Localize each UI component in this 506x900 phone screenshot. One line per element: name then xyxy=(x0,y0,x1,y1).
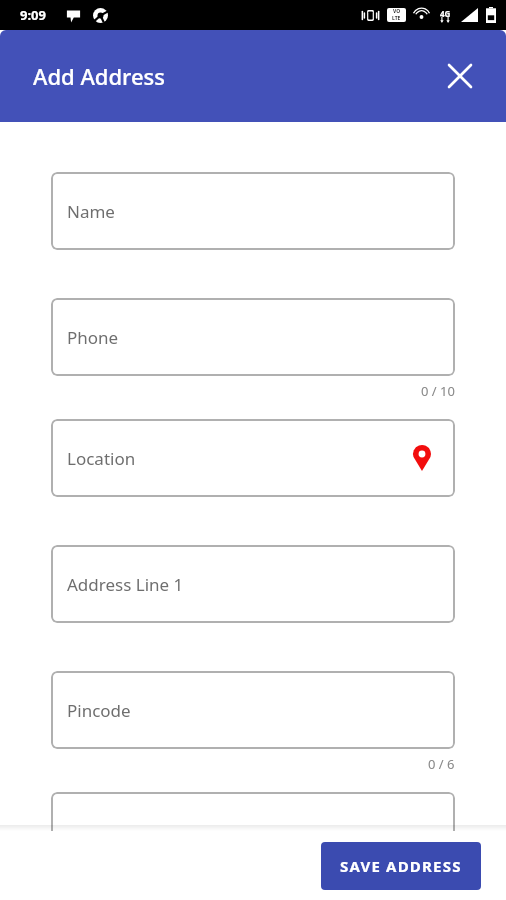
button[interactable]: Pincode xyxy=(51,671,455,749)
staticText: LTE xyxy=(392,15,401,22)
button[interactable]: Phone xyxy=(51,298,455,376)
staticText: 4G xyxy=(440,8,451,19)
staticText: SAVE ADDRESS xyxy=(340,856,462,876)
button[interactable]: Address Line 1 xyxy=(51,545,455,623)
staticText: Pincode xyxy=(67,699,131,722)
button[interactable]: Name xyxy=(51,172,455,250)
staticText: Location xyxy=(67,447,136,470)
button[interactable]: Pick location xyxy=(405,441,439,475)
button[interactable]: SAVE ADDRESS xyxy=(321,842,481,890)
staticText: Name xyxy=(67,200,115,223)
button[interactable]: Close xyxy=(438,54,482,98)
button[interactable] xyxy=(51,792,455,870)
staticText: Add Address xyxy=(33,61,165,91)
button[interactable]: Location xyxy=(51,419,455,497)
staticText: 0 / 6 xyxy=(428,755,455,773)
staticText: Address Line 1 xyxy=(67,573,184,596)
staticText: VO xyxy=(393,8,401,15)
staticText: Phone xyxy=(67,326,119,349)
staticText: 0 / 10 xyxy=(421,382,455,400)
staticText: 9:09 xyxy=(20,6,46,24)
